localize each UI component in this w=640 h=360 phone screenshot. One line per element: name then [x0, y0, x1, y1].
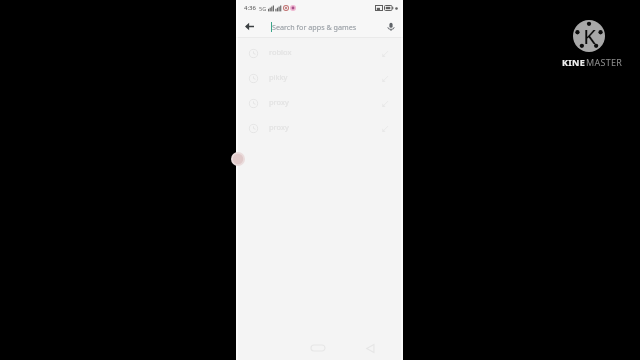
staticText: MASTER [586, 56, 623, 68]
button[interactable]: Home [308, 341, 328, 355]
staticText: roblox [269, 47, 292, 57]
staticText: pikky [269, 72, 288, 82]
button[interactable]: Back [236, 16, 262, 37]
staticText: 5G [259, 5, 267, 12]
staticText: Search for apps & games [272, 22, 357, 32]
button[interactable]: Voice search [379, 16, 403, 37]
staticText: proxy [269, 97, 289, 107]
staticText: 4:36 [244, 4, 256, 12]
staticText: KINE [562, 56, 586, 68]
staticText: K [583, 23, 596, 50]
button[interactable]: Back [361, 341, 379, 355]
staticText: proxy [269, 122, 289, 132]
